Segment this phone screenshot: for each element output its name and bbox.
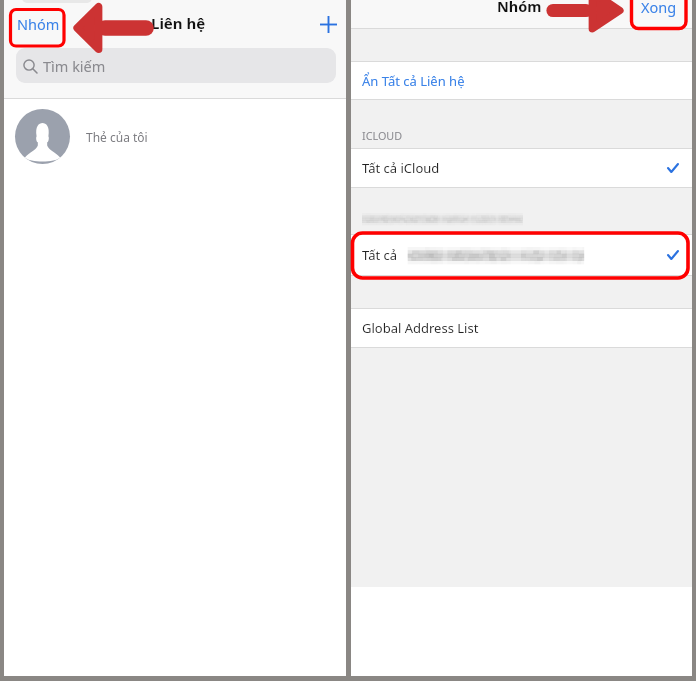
staticText: ICLOUD [362, 128, 403, 143]
button[interactable]: Xong [637, 0, 681, 21]
staticText: Nhóm [497, 0, 542, 16]
staticText: Nhóm [17, 14, 60, 34]
button[interactable]: Ẩn Tất cả Liên hệ [351, 61, 692, 100]
button[interactable]: Thẻ của tôi [4, 99, 346, 174]
staticText: Xong [641, 0, 677, 17]
staticText: Tất cả iCloud [362, 159, 440, 177]
staticText: Tất cả [362, 246, 398, 264]
button[interactable]: Global Address List [351, 308, 692, 348]
button[interactable]: Nhóm [13, 9, 64, 39]
staticText: Tìm kiếm [43, 56, 106, 76]
staticText: Ẩn Tất cả Liên hệ [362, 72, 465, 90]
button[interactable]: Tất cả iCloud [351, 148, 692, 188]
button[interactable]: Add contact [314, 10, 342, 38]
button[interactable]: Tìm kiếm [16, 48, 336, 83]
staticText: Liên hệ [151, 13, 206, 33]
button[interactable]: Tất cả [351, 234, 692, 276]
staticText: Thẻ của tôi [86, 129, 148, 145]
staticText: Global Address List [362, 319, 479, 337]
